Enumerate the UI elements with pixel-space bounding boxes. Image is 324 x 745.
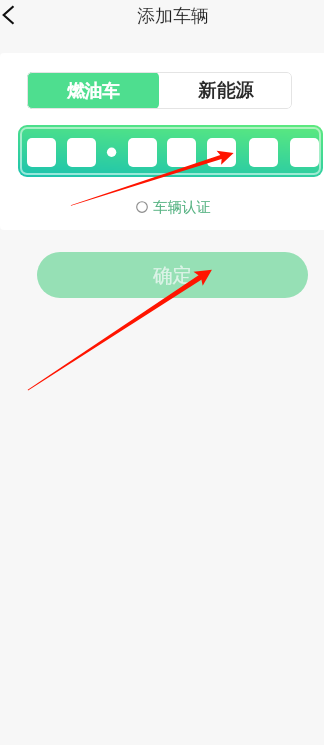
- button[interactable]: 确定: [37, 252, 308, 298]
- button[interactable]: Back: [0, 0, 30, 37]
- button[interactable]: Plate character 4: [167, 138, 196, 167]
- staticText: 确定: [153, 263, 192, 288]
- staticText: 添加车辆: [137, 5, 209, 28]
- staticText: 车辆认证: [153, 198, 211, 216]
- button[interactable]: 燃油车: [27, 72, 159, 109]
- button[interactable]: 车辆认证: [136, 198, 211, 216]
- button[interactable]: Plate character 3: [128, 138, 157, 167]
- button[interactable]: Plate character 2: [67, 138, 96, 167]
- staticText: 新能源: [198, 79, 254, 102]
- button[interactable]: Plate character 6: [249, 138, 278, 167]
- staticText: 燃油车: [67, 80, 120, 102]
- button[interactable]: 新能源: [159, 72, 292, 109]
- button[interactable]: Plate character 1: [27, 138, 56, 167]
- button[interactable]: Plate character 5: [207, 138, 236, 167]
- button[interactable]: Plate character 7: [290, 138, 319, 167]
